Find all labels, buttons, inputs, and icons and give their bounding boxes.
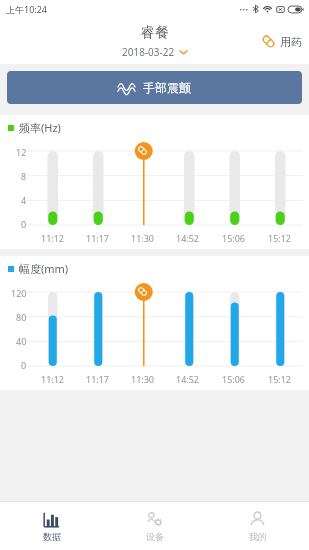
button[interactable]: 我的 (206, 502, 309, 550)
staticText: 12 (16, 146, 27, 158)
button[interactable]: 手部震颤 (7, 71, 302, 104)
staticText: 15:06 (222, 373, 246, 385)
staticText: 40 (16, 335, 27, 347)
staticText: 11:30 (131, 232, 155, 244)
staticText: 11:17 (86, 373, 110, 385)
button[interactable]: 2018-03-22 (122, 45, 188, 59)
staticText: 手部震颤 (143, 80, 191, 95)
staticText: 11:17 (86, 232, 110, 244)
staticText: 11:12 (41, 232, 65, 244)
staticText: 80 (16, 311, 27, 323)
staticText: 120 (11, 287, 27, 299)
staticText: 15:12 (268, 232, 292, 244)
staticText: 0 (21, 359, 27, 371)
staticText: 频率(Hz) (19, 120, 61, 135)
staticText: 15:12 (268, 373, 292, 385)
staticText: 14:52 (176, 232, 200, 244)
staticText: 幅度(mm) (19, 261, 69, 276)
button[interactable]: 用药 (261, 34, 302, 49)
staticText: 2018-03-22 (122, 45, 175, 59)
staticText: 15:06 (222, 232, 246, 244)
staticText: 14:52 (176, 373, 200, 385)
button[interactable]: 设备 (103, 502, 206, 550)
staticText: 数据 (43, 531, 61, 542)
staticText: 4 (21, 194, 27, 206)
staticText: 用药 (280, 35, 302, 49)
staticText: 11:30 (131, 373, 155, 385)
staticText: 11:12 (41, 373, 65, 385)
staticText: 0 (21, 218, 27, 230)
staticText: 设备 (146, 531, 164, 542)
staticText: 睿餐 (141, 24, 169, 42)
button[interactable]: 数据 (0, 502, 103, 550)
staticText: 上午10:24 (6, 3, 48, 15)
staticText: 8 (21, 170, 27, 182)
staticText: 我的 (249, 531, 267, 542)
